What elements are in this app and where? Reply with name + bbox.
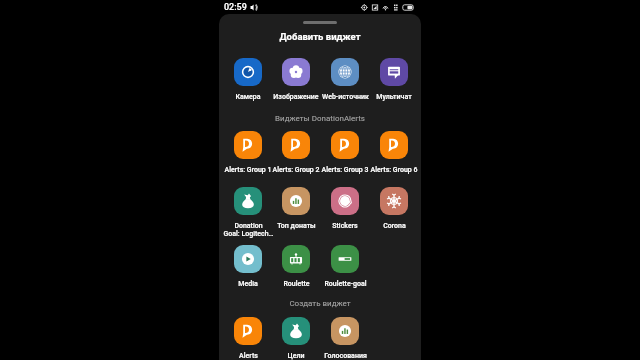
button[interactable]: Мультичат: [364, 58, 421, 101]
button[interactable]: Alerts: Group 3: [315, 131, 375, 174]
staticText: Donation Goal: Logitech…: [223, 222, 274, 238]
staticText: Цели: [287, 352, 305, 360]
staticText: Roulette-goal: [324, 280, 367, 288]
staticText: Alerts: Group 2: [272, 166, 320, 174]
staticText: Топ донаты: [277, 222, 316, 230]
button[interactable]: Камера: [219, 58, 278, 101]
staticText: Виджеты DonationAlerts: [219, 114, 421, 123]
button[interactable]: Цели: [266, 317, 326, 360]
staticText: Изображение: [273, 93, 319, 101]
staticText: Alerts: [239, 352, 258, 360]
staticText: Камера: [235, 93, 261, 101]
staticText: Corona: [383, 222, 406, 230]
staticText: Создать виджет: [219, 299, 421, 308]
button[interactable]: Alerts: [219, 317, 278, 360]
staticText: Web-источник: [322, 93, 369, 101]
staticText: Media: [238, 280, 258, 288]
button[interactable]: Alerts: Group 2: [266, 131, 326, 174]
staticText: Stickers: [332, 222, 358, 230]
staticText: Roulette: [283, 280, 310, 288]
button[interactable]: Alerts: Group 1: [219, 131, 278, 174]
button[interactable]: Изображение: [266, 58, 326, 101]
staticText: Голосования: [324, 352, 367, 360]
button[interactable]: Топ донаты: [266, 187, 326, 230]
staticText: Alerts: Group 6: [370, 166, 418, 174]
staticText: Добавить виджет: [219, 31, 421, 42]
button[interactable]: Donation Goal: Logitech…: [219, 187, 278, 238]
button[interactable]: Roulette-goal: [315, 245, 375, 288]
staticText: Alerts: Group 1: [224, 166, 272, 174]
button[interactable]: Web-источник: [315, 58, 375, 101]
staticText: Alerts: Group 3: [321, 166, 369, 174]
button[interactable]: Stickers: [315, 187, 375, 230]
button[interactable]: Corona: [364, 187, 421, 230]
button[interactable]: Media: [219, 245, 278, 288]
staticText: 02:59: [224, 2, 247, 13]
button[interactable]: Roulette: [266, 245, 326, 288]
staticText: Мультичат: [376, 93, 412, 101]
button[interactable]: Alerts: Group 6: [364, 131, 421, 174]
button[interactable]: Голосования: [315, 317, 375, 360]
